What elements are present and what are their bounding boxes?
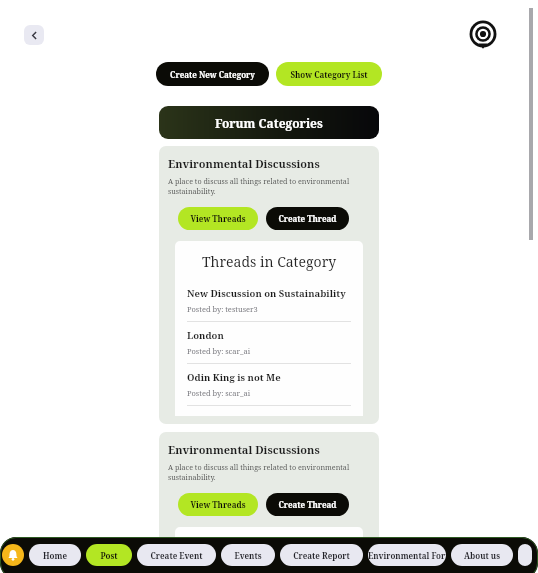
button[interactable]: View Threads (178, 493, 258, 516)
staticText: Environmental Discussions (168, 442, 320, 457)
staticText: Create Event (150, 550, 203, 561)
button[interactable]: New Discussion on Sustainability (187, 280, 351, 321)
staticText: A place to discuss all things related to… (168, 176, 370, 196)
staticText: London (187, 329, 224, 342)
staticText: View Threads (190, 499, 246, 510)
staticText: Threads in Category (202, 252, 337, 271)
button[interactable]: About us (451, 544, 513, 566)
staticText: Events (234, 550, 262, 561)
staticText: Create Thread (278, 213, 337, 224)
button[interactable]: Post (86, 544, 132, 566)
staticText: Forum Categories (215, 115, 323, 131)
button[interactable]: Location (469, 20, 497, 48)
staticText: Create Thread (278, 499, 337, 510)
button[interactable]: Events (221, 544, 275, 566)
button[interactable]: Back (24, 25, 44, 45)
staticText: Create Report (293, 550, 350, 561)
staticText: About us (464, 550, 500, 561)
staticText: Odin King is not Me (187, 371, 281, 384)
staticText: Environmental Discussions (168, 156, 320, 171)
button[interactable]: Environmental Form (368, 544, 446, 566)
button[interactable]: Create Report (280, 544, 363, 566)
staticText: Post (100, 550, 118, 561)
button[interactable]: Notifications (2, 544, 24, 566)
button[interactable]: Odin King is not Me (187, 364, 351, 405)
staticText: A place to discuss all things related to… (168, 462, 370, 482)
staticText: View Threads (190, 213, 246, 224)
button[interactable]: View Threads (178, 207, 258, 230)
button[interactable]: Show Category List (276, 62, 382, 86)
staticText: Environmental Form (368, 550, 446, 561)
staticText: Posted by: testuser3 (187, 304, 258, 314)
button[interactable]: Create Event (137, 544, 216, 566)
staticText: Threads in Category (202, 538, 337, 557)
staticText: Show Category List (290, 69, 368, 80)
staticText: Posted by: scar_ai (187, 346, 251, 356)
staticText: Create New Category (170, 69, 255, 80)
button[interactable]: Create Thread (266, 207, 349, 230)
staticText: Home (43, 550, 67, 561)
button[interactable]: Home (29, 544, 81, 566)
button[interactable]: London (187, 322, 351, 363)
button[interactable]: Logout (518, 544, 532, 566)
staticText: Posted by: scar_ai (187, 388, 251, 398)
staticText: New Discussion on Sustainability (187, 287, 346, 300)
button[interactable]: Create New Category (156, 62, 269, 86)
button[interactable]: Create Thread (266, 493, 349, 516)
